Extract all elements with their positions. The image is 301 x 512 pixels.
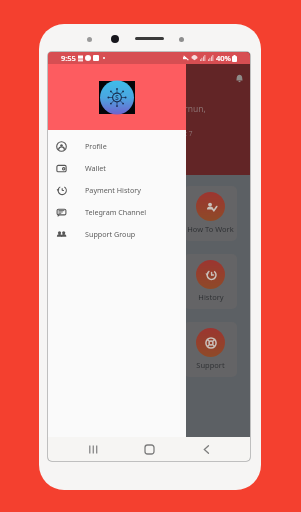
staticText: Support Group <box>85 229 136 239</box>
staticText: Your ID : 7 <box>161 129 193 138</box>
staticText: S <box>115 93 119 103</box>
staticText: Good Afternun, <box>144 103 206 115</box>
staticText: History <box>198 292 224 302</box>
staticText: Add Money <box>130 224 170 234</box>
staticText: Payment History <box>85 185 141 195</box>
staticText: 9:55 <box>61 53 76 63</box>
staticText: How To Work <box>187 224 234 234</box>
staticText: Support <box>196 360 225 370</box>
staticText: Telegram Channel <box>85 207 147 217</box>
button[interactable]: Back <box>194 437 218 461</box>
button[interactable]: Telegram Channel <box>48 201 186 223</box>
button[interactable]: Recents <box>81 437 105 461</box>
button[interactable]: How To Work <box>184 186 237 241</box>
button[interactable]: Support Group <box>48 223 186 245</box>
staticText: Wallet <box>85 163 106 173</box>
button[interactable]: Profile <box>48 135 186 157</box>
button[interactable]: Support <box>184 322 237 377</box>
button[interactable]: Payment History <box>48 179 186 201</box>
button[interactable]: Wallet <box>48 157 186 179</box>
button[interactable]: History <box>184 254 237 309</box>
button[interactable]: Payment <box>61 186 115 241</box>
staticText: 40% <box>216 53 231 63</box>
button[interactable]: Home <box>137 437 161 461</box>
staticText: Payment <box>72 224 104 234</box>
button[interactable]: Notifications <box>233 72 245 84</box>
staticText: Profile <box>85 141 107 151</box>
button[interactable]: Add Money <box>123 186 176 241</box>
